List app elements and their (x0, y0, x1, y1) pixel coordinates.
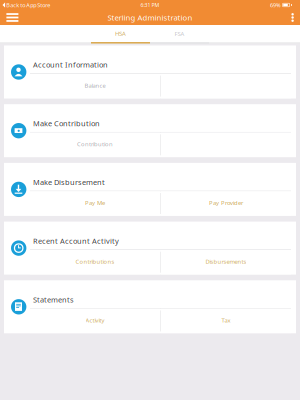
button[interactable]: Pay Provider (161, 191, 291, 216)
staticText: FSA (174, 30, 184, 38)
staticText: Pay Me (85, 199, 105, 207)
staticText: Back to App Store (6, 1, 50, 9)
staticText: Recent Account Activity (33, 236, 119, 246)
staticText: Balance (85, 81, 106, 89)
staticText: HSA (115, 30, 126, 38)
button[interactable]: More options (286, 10, 300, 25)
staticText: 69% (270, 1, 281, 9)
staticText: Make Disbursement (33, 177, 105, 187)
staticText: Contributions (76, 258, 115, 265)
staticText: Sterling Administration (107, 12, 192, 23)
button[interactable]: Back to App Store (2, 1, 50, 9)
staticText: Make Contribution (33, 118, 100, 128)
staticText: Activity (86, 316, 105, 324)
staticText: Statements (33, 294, 74, 305)
staticText: Disbursements (205, 258, 246, 265)
staticText: Account Information (33, 60, 108, 70)
button[interactable]: Disbursements (161, 250, 291, 274)
button[interactable]: Menu (0, 10, 23, 25)
button[interactable]: Balance (30, 74, 160, 98)
staticText: 6:31 PM (140, 1, 159, 9)
staticText: Contribution (77, 140, 113, 148)
staticText: Pay Provider (209, 199, 243, 207)
button[interactable]: HSA (91, 25, 150, 43)
button[interactable]: Tax (161, 309, 291, 333)
staticText: Tax (221, 316, 230, 324)
button[interactable]: FSA (150, 25, 209, 43)
button[interactable]: Contributions (30, 250, 160, 274)
button[interactable]: Activity (30, 309, 160, 333)
button[interactable]: Contribution (30, 133, 160, 157)
button[interactable]: Pay Me (30, 191, 160, 216)
